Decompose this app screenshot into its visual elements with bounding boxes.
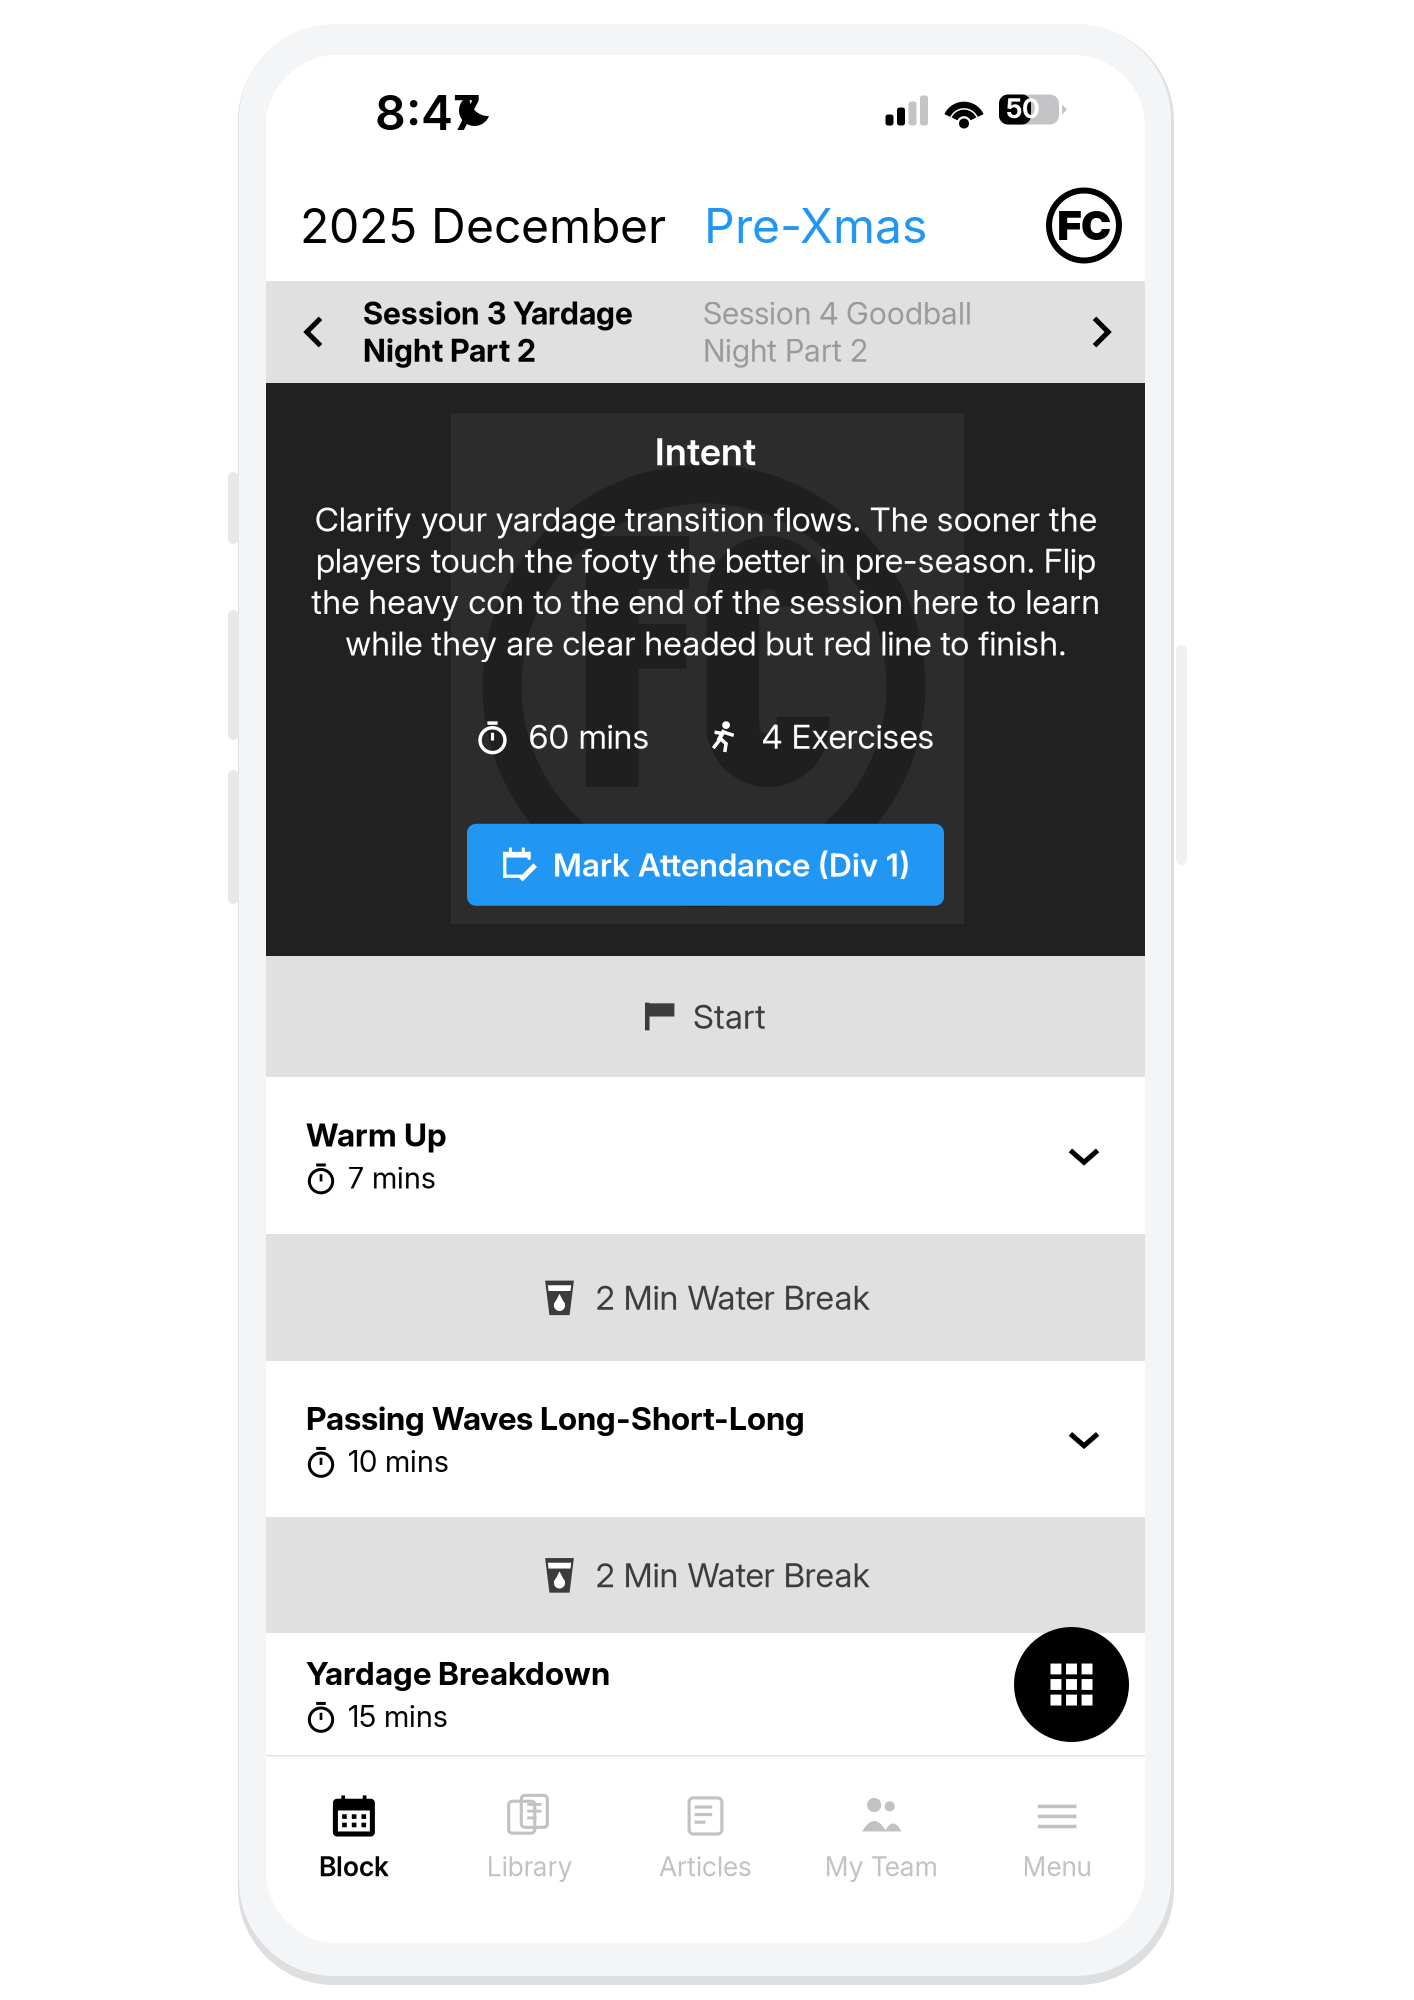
staticText: Intent <box>655 429 756 474</box>
staticText: 10 mins <box>348 1444 449 1479</box>
staticText: Menu <box>1023 1850 1092 1883</box>
staticText: Warm Up <box>306 1115 447 1154</box>
staticText: 2 Min Water Break <box>595 1555 869 1595</box>
button[interactable]: Start <box>266 956 1145 1077</box>
button[interactable]: All exercises <box>1014 1627 1129 1742</box>
button[interactable]: Session 4 Goodball Night Part 2 <box>703 295 1048 369</box>
button[interactable]: Previous session <box>265 281 363 383</box>
staticText: FC <box>1057 201 1110 250</box>
staticText: 2 Min Water Break <box>595 1277 869 1318</box>
staticText: Session 3 Yardage Night Part 2 <box>363 295 633 369</box>
staticText: My Team <box>825 1850 938 1883</box>
staticText: Mark Attendance (Div 1) <box>553 845 910 884</box>
staticText: 60 mins <box>528 716 649 757</box>
button[interactable]: 2025 December <box>300 196 927 255</box>
staticText: Passing Waves Long-Short-Long <box>306 1399 805 1438</box>
button[interactable]: Warm Up <box>266 1077 1145 1234</box>
button[interactable]: Session 3 Yardage Night Part 2 <box>363 295 703 369</box>
staticText: Yardage Breakdown <box>306 1654 610 1693</box>
staticText: 4 Exercises <box>761 716 934 757</box>
button[interactable]: Passing Waves Long-Short-Long <box>266 1361 1145 1517</box>
staticText: Start <box>693 996 766 1037</box>
staticText: Pre-Xmas <box>704 196 927 255</box>
button[interactable]: 2 Min Water Break <box>266 1517 1145 1633</box>
button[interactable]: 2 Min Water Break <box>266 1234 1145 1361</box>
staticText: 50 <box>1006 92 1040 125</box>
staticText: Clarify your yardage transition flows. T… <box>311 499 1100 663</box>
button[interactable]: Library <box>442 1772 618 1904</box>
button[interactable]: Mark Attendance (Div 1) <box>467 824 944 906</box>
button[interactable]: Articles <box>618 1772 793 1904</box>
staticText: Articles <box>659 1850 752 1883</box>
staticText: 15 mins <box>348 1699 448 1734</box>
staticText: Session 4 Goodball Night Part 2 <box>703 295 972 369</box>
button[interactable]: Club logo <box>1049 190 1119 260</box>
button[interactable]: Block <box>266 1772 442 1904</box>
staticText: 2025 December <box>300 196 666 255</box>
staticText: 8:47 <box>375 83 481 142</box>
staticText: Library <box>487 1850 573 1883</box>
button[interactable]: Yardage Breakdown <box>266 1633 1145 1755</box>
button[interactable]: Menu <box>969 1772 1145 1904</box>
staticText: 7 mins <box>348 1160 436 1196</box>
button[interactable]: My Team <box>793 1772 969 1904</box>
staticText: Block <box>319 1850 389 1883</box>
button[interactable]: Next session <box>1056 281 1146 383</box>
